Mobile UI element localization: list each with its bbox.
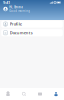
staticText: Good morning bbox=[9, 9, 30, 13]
button[interactable]: Hi, Emma bbox=[0, 5, 64, 13]
button[interactable]: Profile bbox=[1, 20, 63, 28]
staticText: Documents bbox=[10, 30, 33, 35]
staticText: Profile bbox=[10, 21, 22, 27]
staticText: 9:41 bbox=[3, 0, 10, 5]
button[interactable]: Home bbox=[0, 88, 16, 100]
button[interactable]: Search bbox=[16, 88, 32, 100]
button[interactable]: Cards bbox=[32, 88, 48, 100]
staticText: Hi, Emma bbox=[9, 5, 23, 9]
button[interactable]: Documents bbox=[1, 29, 63, 36]
button[interactable]: Profile bbox=[48, 88, 64, 100]
